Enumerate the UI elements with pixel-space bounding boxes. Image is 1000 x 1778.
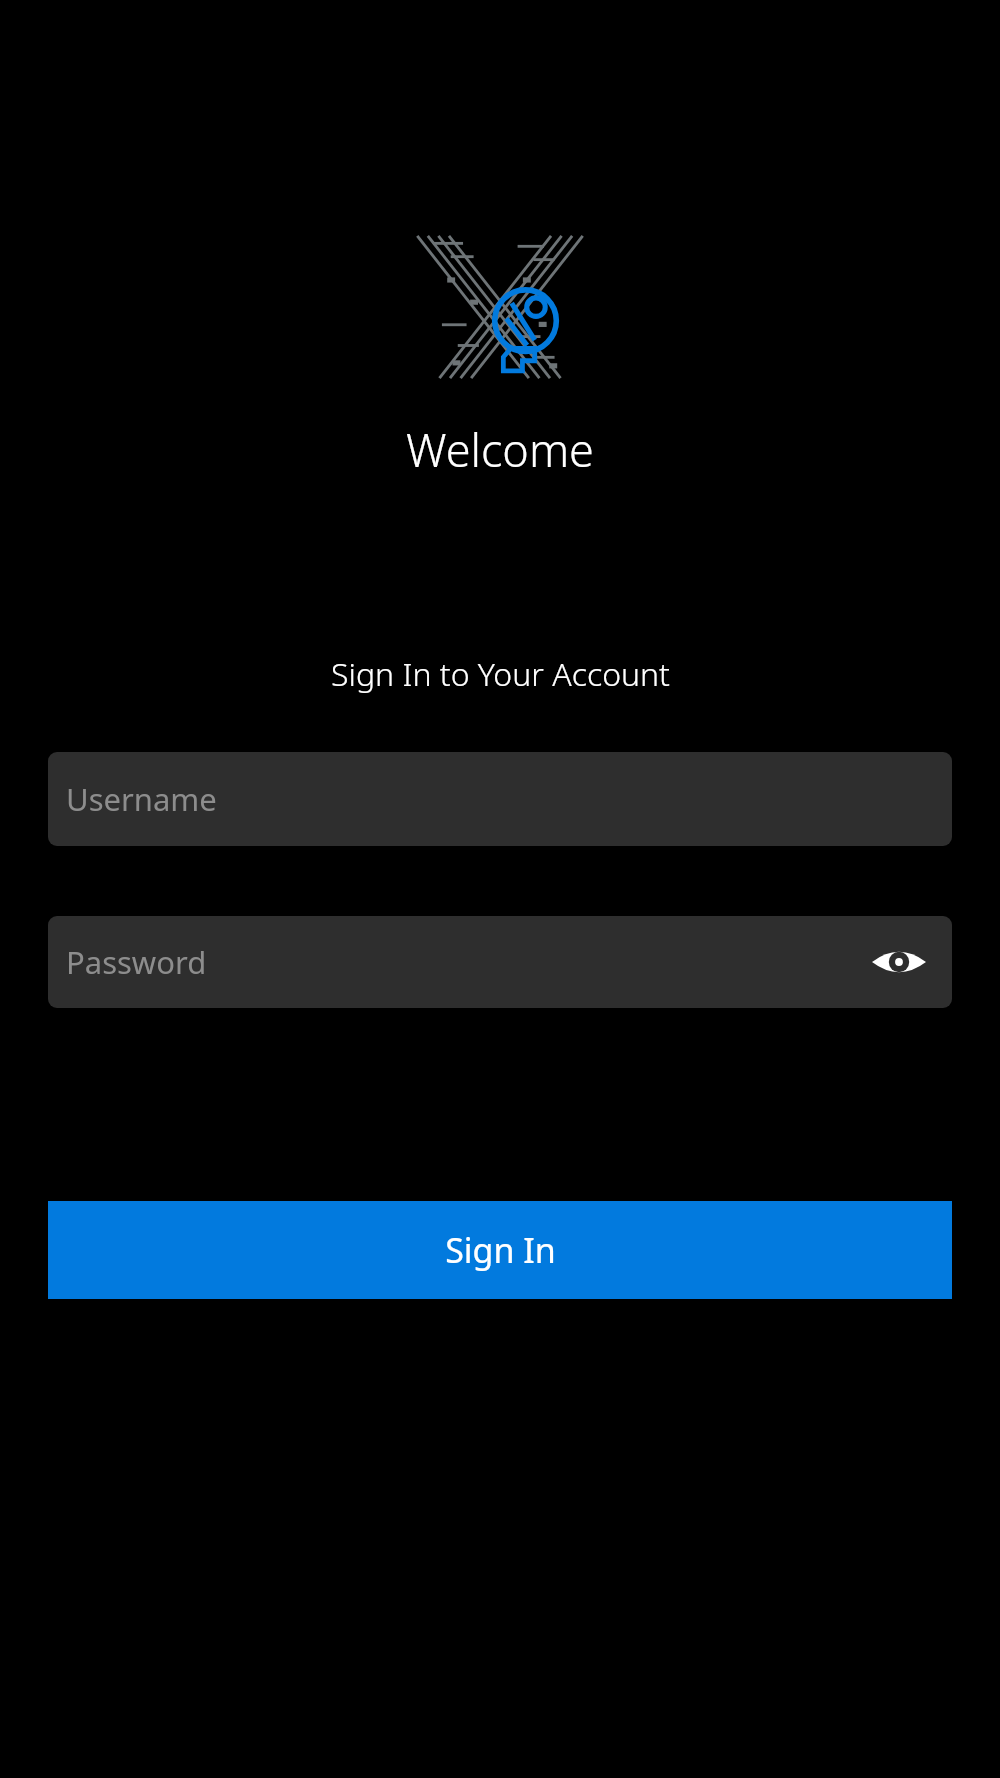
button[interactable]: Username [48,752,952,846]
staticText: Sign In [445,1227,556,1273]
staticText: Username [66,778,217,820]
button[interactable]: Show password [866,929,932,995]
button[interactable]: Sign In [48,1201,952,1299]
staticText: Password [66,941,207,983]
staticText: Welcome [406,419,594,480]
staticText: Sign In to Your Account [331,652,670,696]
button[interactable]: Password [48,916,952,1008]
